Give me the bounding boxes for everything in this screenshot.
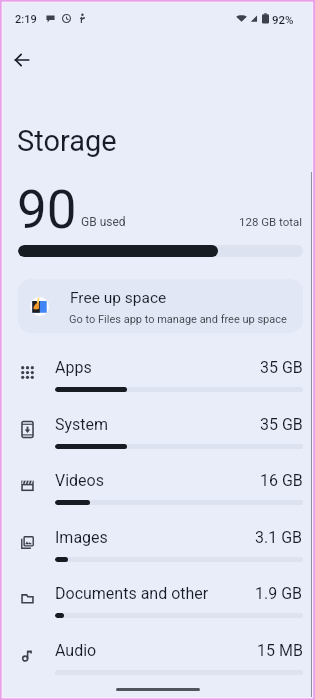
button[interactable]: Documents and other: [0, 578, 315, 635]
staticText: Apps: [55, 358, 92, 377]
staticText: Storage: [17, 124, 117, 158]
button[interactable]: Audio: [0, 635, 315, 692]
staticText: Documents and other: [55, 584, 209, 603]
button[interactable]: System: [0, 409, 315, 466]
staticText: Audio: [55, 641, 97, 660]
staticText: 3.1 GB: [255, 528, 303, 547]
staticText: Free up space: [70, 289, 167, 307]
staticText: Go to Files app to manage and free up sp…: [69, 313, 287, 326]
staticText: System: [55, 415, 109, 434]
button[interactable]: Apps: [0, 352, 315, 409]
staticText: 92%: [272, 13, 294, 26]
staticText: Images: [55, 528, 108, 547]
button[interactable]: Videos: [0, 465, 315, 522]
staticText: Videos: [55, 471, 104, 490]
staticText: 15 MB: [257, 641, 303, 660]
button[interactable]: Free up space: [18, 279, 303, 333]
staticText: 16 GB: [260, 471, 303, 490]
staticText: 128 GB total: [239, 215, 303, 228]
staticText: GB used: [81, 215, 126, 229]
staticText: 2:19: [15, 13, 37, 26]
button[interactable]: Images: [0, 522, 315, 579]
staticText: 1.9 GB: [255, 584, 303, 603]
staticText: 35 GB: [260, 358, 303, 377]
staticText: 35 GB: [260, 415, 303, 434]
staticText: 90: [17, 179, 77, 241]
button[interactable]: Back: [2, 40, 42, 80]
